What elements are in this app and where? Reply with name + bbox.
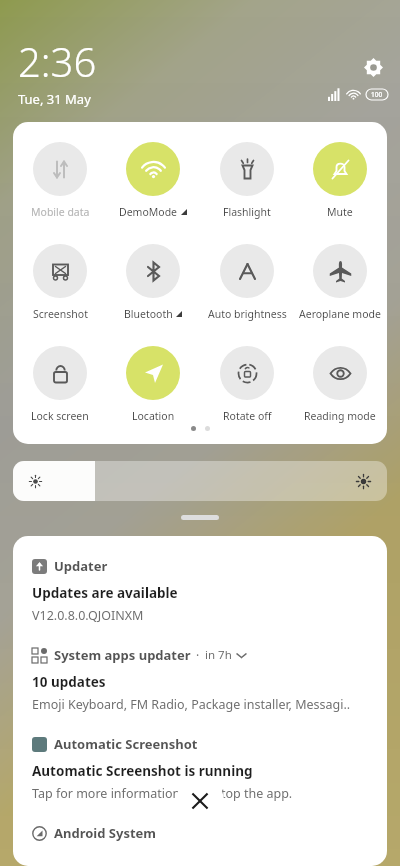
staticText: Lock screen bbox=[31, 409, 89, 423]
staticText: Updater bbox=[54, 557, 108, 575]
staticText: V12.0.8.0.QJOINXM bbox=[32, 607, 144, 624]
staticText: · bbox=[196, 647, 200, 663]
staticText: Flashlight bbox=[223, 205, 271, 219]
staticText: Updates are available bbox=[32, 584, 178, 602]
staticText: Mobile data bbox=[31, 205, 90, 219]
button[interactable]: Clear all notifications bbox=[176, 777, 224, 825]
button[interactable]: Auto brightness bbox=[201, 242, 293, 323]
staticText: Location bbox=[132, 409, 175, 423]
button[interactable]: DemoMode bbox=[107, 140, 199, 221]
staticText: Tap for more information or to stop the … bbox=[32, 785, 293, 802]
staticText: in 7h bbox=[205, 647, 232, 663]
staticText: Mute bbox=[327, 205, 353, 219]
staticText: DemoMode bbox=[119, 205, 178, 219]
staticText: Auto brightness bbox=[208, 307, 287, 321]
staticText: Screenshot bbox=[33, 307, 88, 321]
staticText: Emoji Keyboard, FM Radio, Package instal… bbox=[32, 696, 351, 713]
button[interactable]: Bluetooth bbox=[107, 242, 199, 323]
button[interactable]: Aeroplane mode bbox=[294, 242, 386, 323]
staticText: 2:36 bbox=[18, 34, 97, 88]
staticText: Automatic Screenshot bbox=[54, 735, 198, 753]
staticText: Reading mode bbox=[304, 409, 376, 423]
button[interactable]: Updater bbox=[32, 557, 371, 575]
staticText: Tue, 31 May bbox=[18, 90, 91, 108]
button[interactable]: Lock screen bbox=[14, 344, 106, 425]
staticText: Bluetooth bbox=[124, 307, 173, 321]
button[interactable]: Mute bbox=[294, 140, 386, 221]
button[interactable]: Automatic Screenshot bbox=[32, 735, 371, 753]
button[interactable]: System apps updater bbox=[32, 646, 371, 664]
staticText: 10 updates bbox=[32, 673, 106, 691]
button[interactable]: Location bbox=[107, 344, 199, 425]
button[interactable]: Flashlight bbox=[201, 140, 293, 221]
button[interactable]: Settings bbox=[358, 52, 388, 82]
button[interactable]: Android System bbox=[32, 824, 371, 842]
button[interactable]: Reading mode bbox=[294, 344, 386, 425]
button[interactable]: Mobile data bbox=[14, 140, 106, 221]
staticText: Aeroplane mode bbox=[299, 307, 381, 321]
staticText: Rotate off bbox=[223, 409, 272, 423]
staticText: Automatic Screenshot is running bbox=[32, 762, 253, 780]
staticText: 100 bbox=[371, 90, 383, 99]
staticText: System apps updater bbox=[54, 646, 191, 664]
button[interactable]: Brightness bbox=[13, 461, 387, 501]
button[interactable]: Rotate off bbox=[201, 344, 293, 425]
staticText: Android System bbox=[54, 824, 157, 842]
button[interactable]: Screenshot bbox=[14, 242, 106, 323]
